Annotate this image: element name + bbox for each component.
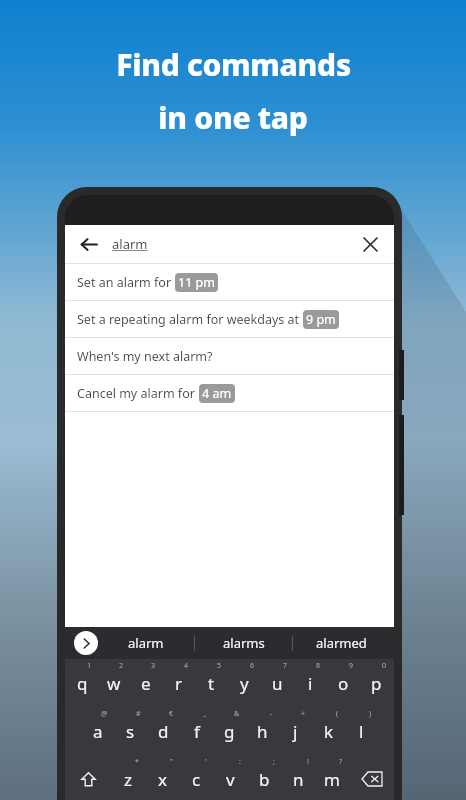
button[interactable]: alarm — [112, 235, 356, 253]
staticText: Find commands — [116, 44, 351, 85]
staticText: * — [135, 757, 139, 767]
button[interactable]: Set an alarm for — [65, 264, 394, 301]
button[interactable]: l — [345, 707, 378, 755]
button[interactable]: i — [294, 659, 327, 707]
button[interactable]: n — [281, 755, 315, 800]
button[interactable]: d — [147, 707, 180, 755]
button[interactable]: x — [145, 755, 179, 800]
button[interactable]: r — [162, 659, 195, 707]
button[interactable]: alarmed — [293, 627, 390, 659]
staticText: ! — [307, 757, 309, 767]
staticText: u — [272, 672, 283, 695]
staticText: 3 — [151, 661, 156, 671]
staticText: _ — [203, 709, 207, 719]
staticText: 5 — [217, 661, 222, 671]
staticText: a — [93, 720, 103, 743]
staticText: - — [270, 709, 273, 719]
staticText: y — [240, 672, 249, 695]
staticText: l — [359, 720, 364, 743]
staticText: d — [158, 720, 169, 743]
staticText: o — [338, 672, 349, 695]
button[interactable]: More suggestions — [74, 631, 98, 655]
staticText: 6 — [250, 661, 255, 671]
staticText: ( — [336, 709, 339, 719]
staticText: n — [293, 768, 304, 791]
button[interactable]: Clear — [356, 230, 384, 258]
button[interactable]: u — [261, 659, 294, 707]
staticText: 7 — [283, 661, 288, 671]
staticText: b — [259, 768, 270, 791]
staticText: & — [234, 709, 240, 719]
staticText: 9 — [349, 661, 354, 671]
staticText: @ — [101, 709, 108, 719]
staticText: r — [175, 672, 183, 695]
button[interactable]: q — [66, 659, 98, 707]
button[interactable]: k — [312, 707, 345, 755]
staticText: h — [257, 720, 268, 743]
staticText: alarm — [128, 634, 164, 652]
staticText: Set an alarm for — [77, 274, 175, 291]
staticText: 4 — [184, 661, 189, 671]
button[interactable]: v — [213, 755, 247, 800]
staticText: j — [293, 720, 298, 743]
staticText: 4 am — [202, 385, 232, 402]
staticText: x — [158, 768, 167, 791]
staticText: t — [208, 672, 215, 695]
staticText: : — [239, 757, 241, 767]
staticText: z — [124, 768, 132, 791]
staticText: 0 — [382, 661, 387, 671]
button[interactable]: c — [179, 755, 213, 800]
staticText: € — [169, 709, 174, 719]
staticText: m — [324, 768, 340, 791]
staticText: 1 — [87, 661, 92, 671]
staticText: 11 pm — [178, 274, 215, 291]
staticText: e — [141, 672, 151, 695]
staticText: ) — [369, 709, 372, 719]
staticText: f — [194, 720, 200, 743]
button[interactable]: a — [81, 707, 114, 755]
button[interactable]: Shift — [65, 755, 111, 800]
button[interactable]: w — [98, 659, 130, 707]
button[interactable]: Backspace — [349, 755, 394, 800]
button[interactable]: p — [360, 659, 393, 707]
staticText: i — [308, 672, 313, 695]
button[interactable]: Cancel my alarm for — [65, 375, 394, 412]
staticText: Cancel my alarm for — [77, 385, 199, 402]
staticText: k — [324, 720, 334, 743]
button[interactable]: m — [315, 755, 349, 800]
staticText: g — [224, 720, 235, 743]
staticText: in one tap — [158, 97, 308, 138]
button[interactable]: e — [130, 659, 162, 707]
staticText: 9 pm — [306, 311, 336, 328]
button[interactable]: Back — [73, 229, 103, 259]
button[interactable]: z — [111, 755, 145, 800]
button[interactable]: Set a repeating alarm for weekdays at — [65, 301, 394, 338]
button[interactable]: t — [195, 659, 228, 707]
staticText: " — [170, 757, 173, 767]
button[interactable]: f — [180, 707, 213, 755]
button[interactable]: b — [247, 755, 281, 800]
button[interactable]: g — [213, 707, 246, 755]
staticText: v — [226, 768, 235, 791]
staticText: 8 — [316, 661, 321, 671]
staticText: ? — [339, 757, 343, 767]
button[interactable]: When's my next alarm? — [65, 338, 394, 375]
staticText: alarmed — [316, 634, 367, 652]
staticText: ' — [205, 757, 207, 767]
staticText: When's my next alarm? — [77, 348, 213, 365]
staticText: s — [126, 720, 135, 743]
staticText: q — [77, 672, 88, 695]
button[interactable]: alarm — [98, 627, 194, 659]
button[interactable]: alarms — [195, 627, 292, 659]
staticText: + — [301, 709, 306, 719]
staticText: Set a repeating alarm for weekdays at — [77, 311, 303, 328]
staticText: alarms — [223, 634, 265, 652]
button[interactable]: s — [114, 707, 147, 755]
staticText: 2 — [119, 661, 124, 671]
button[interactable]: y — [228, 659, 261, 707]
button[interactable]: h — [246, 707, 279, 755]
button[interactable]: o — [327, 659, 360, 707]
staticText: # — [136, 709, 141, 719]
button[interactable]: j — [279, 707, 312, 755]
staticText: c — [192, 768, 201, 791]
